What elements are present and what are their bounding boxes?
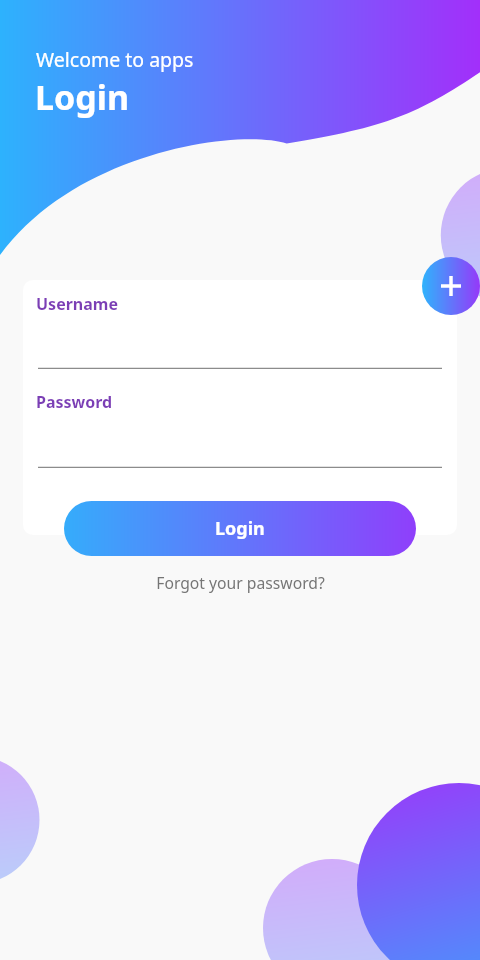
staticText: Username — [36, 293, 118, 315]
staticText: Login — [215, 516, 265, 541]
button[interactable]: Add new — [422, 257, 480, 315]
staticText: Password — [36, 391, 113, 413]
staticText: Login — [35, 74, 130, 120]
button[interactable]: Forgot your password? — [0, 567, 480, 597]
staticText: Welcome to apps — [36, 46, 194, 73]
button[interactable]: Login — [64, 501, 416, 556]
staticText: Forgot your password? — [156, 572, 325, 593]
